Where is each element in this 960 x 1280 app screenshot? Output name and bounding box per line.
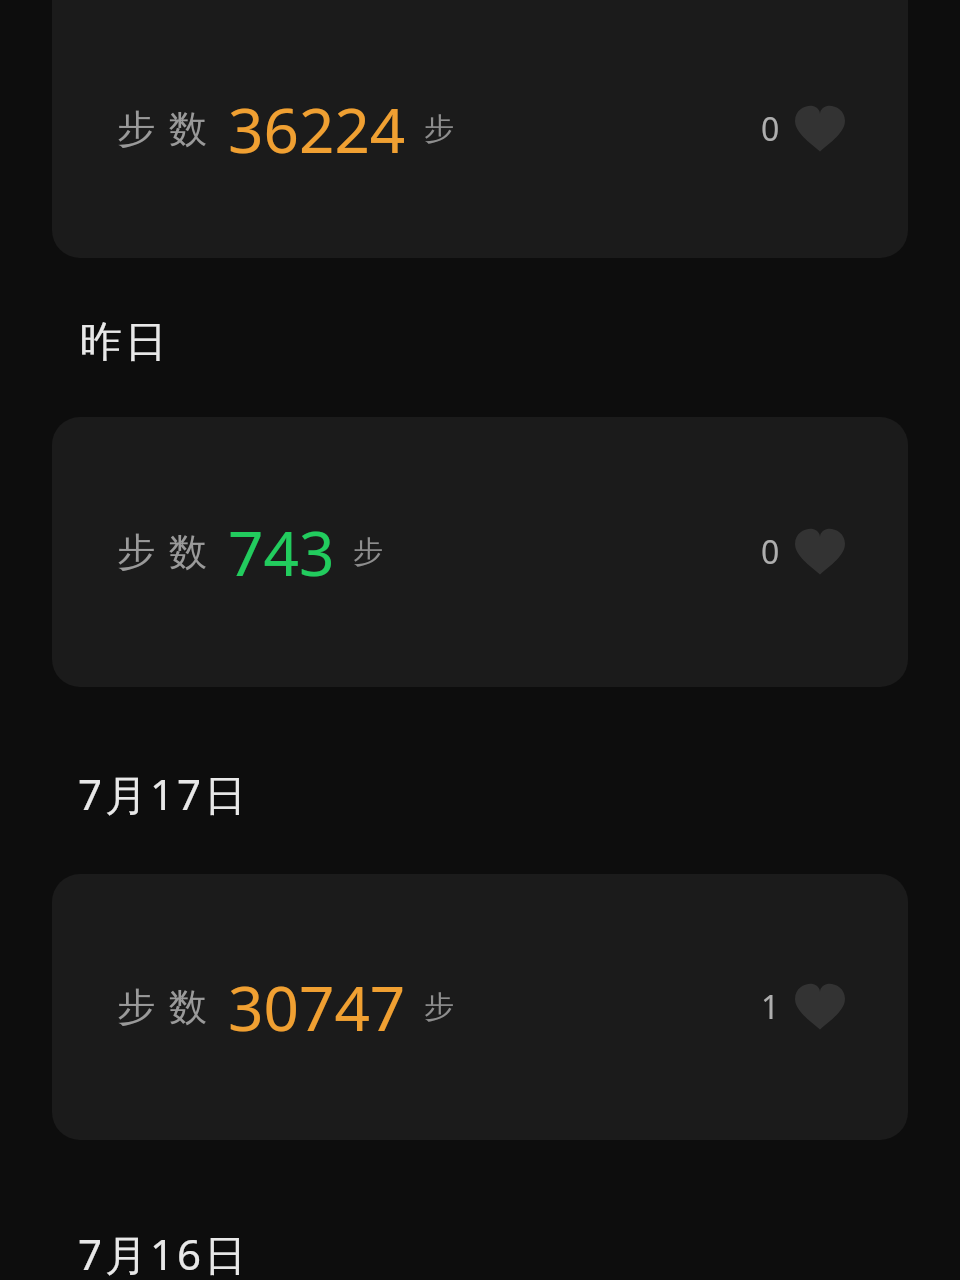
staticText: 1 xyxy=(761,985,780,1029)
button[interactable]: 步数 xyxy=(52,0,908,258)
staticText: 7月17日 xyxy=(78,765,250,822)
staticText: 昨日 xyxy=(78,316,168,369)
staticText: 743 xyxy=(228,510,335,594)
button[interactable]: Like xyxy=(757,522,850,582)
button[interactable]: 步数 xyxy=(52,874,908,1140)
button[interactable]: Like xyxy=(757,977,850,1037)
staticText: 0 xyxy=(761,530,780,574)
button[interactable]: 步数 xyxy=(52,417,908,687)
staticText: 步 xyxy=(424,110,454,148)
staticText: 7月16日 xyxy=(78,1225,250,1280)
staticText: 30747 xyxy=(228,965,406,1049)
staticText: 36224 xyxy=(228,87,406,171)
staticText: 步数 xyxy=(110,105,214,153)
staticText: 步 xyxy=(424,988,454,1026)
staticText: 步 xyxy=(353,533,383,571)
staticText: 0 xyxy=(761,107,780,151)
staticText: 步数 xyxy=(110,983,214,1031)
button[interactable]: Like xyxy=(757,99,850,159)
staticText: 步数 xyxy=(110,528,214,576)
